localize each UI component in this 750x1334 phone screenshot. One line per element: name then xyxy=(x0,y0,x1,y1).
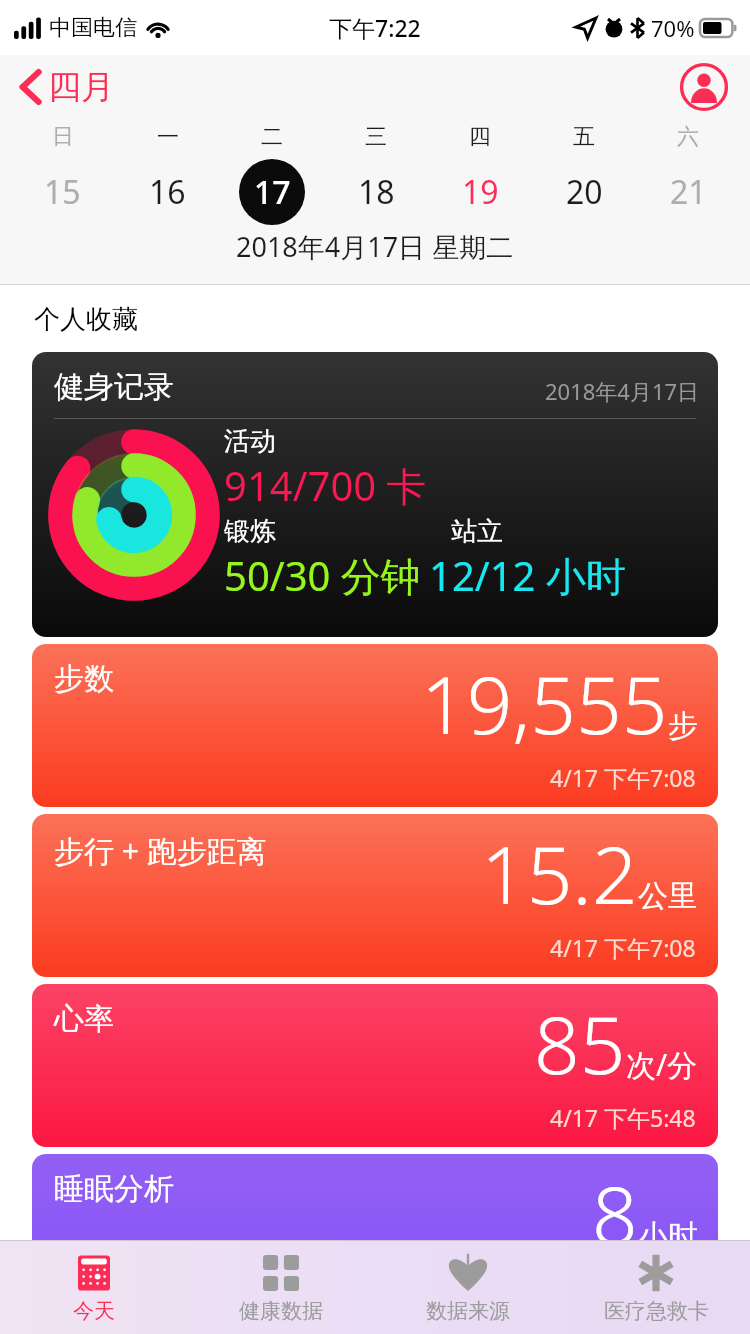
button[interactable]: 心率 xyxy=(32,984,718,1147)
staticText: 20 xyxy=(566,170,603,214)
button[interactable]: 17 xyxy=(220,156,324,228)
staticText: 8 xyxy=(592,1158,638,1267)
staticText: 锻炼 xyxy=(224,515,276,548)
staticText: 步行 + 跑步距离 xyxy=(54,830,267,871)
staticText: 活动 xyxy=(224,425,276,458)
staticText: 步数 xyxy=(54,660,114,698)
staticText: 914/700 卡 xyxy=(224,458,427,513)
button[interactable]: 18 xyxy=(324,156,428,228)
staticText: 公里 xyxy=(638,877,698,915)
staticText: 19,555 xyxy=(421,648,668,757)
staticText: 50/30 分钟 xyxy=(224,548,421,603)
button[interactable]: 19 xyxy=(428,156,532,228)
staticText: 85 xyxy=(534,988,626,1097)
staticText: 2018年4月17日 xyxy=(545,376,700,406)
button[interactable]: 今天 xyxy=(0,1240,187,1334)
button[interactable]: 睡眠分析 xyxy=(32,1154,718,1317)
staticText: 五 xyxy=(573,123,595,151)
button[interactable]: 医疗急救卡 xyxy=(562,1240,750,1334)
button[interactable]: 数据来源 xyxy=(374,1240,562,1334)
staticText: 19 xyxy=(462,170,499,214)
button[interactable]: 个人资料 xyxy=(680,63,728,111)
button[interactable]: 16 xyxy=(115,156,220,228)
staticText: 四月 xyxy=(48,66,114,108)
staticText: 4/17 下午5:48 xyxy=(550,1102,696,1133)
button[interactable]: 健康数据 xyxy=(187,1240,374,1334)
button[interactable]: 步行 + 跑步距离 xyxy=(32,814,718,977)
staticText: 个人收藏 xyxy=(34,303,138,336)
staticText: 4/17 下午7:08 xyxy=(550,932,696,963)
staticText: 中国电信 xyxy=(49,14,137,42)
staticText: 三 xyxy=(365,123,387,151)
staticText: 今天 xyxy=(73,1298,115,1324)
staticText: 12/12 小时 xyxy=(429,548,626,603)
staticText: 健康数据 xyxy=(239,1298,323,1324)
button[interactable]: 15 xyxy=(10,156,115,228)
button[interactable]: 20 xyxy=(532,156,636,228)
staticText: 步 xyxy=(668,707,698,745)
staticText: 4/17 下午7:08 xyxy=(550,762,696,793)
staticText: 医疗急救卡 xyxy=(604,1298,709,1324)
staticText: 16 xyxy=(149,170,186,214)
staticText: 健身记录 xyxy=(54,368,174,406)
staticText: 站立 xyxy=(451,515,503,548)
staticText: 21 xyxy=(670,170,707,214)
staticText: 15 xyxy=(44,170,81,214)
staticText: 次/分 xyxy=(626,1044,698,1085)
staticText: 2018年4月17日 星期二 xyxy=(236,228,514,265)
staticText: 15.2 xyxy=(481,818,638,927)
button[interactable]: 健身记录 xyxy=(32,352,718,637)
staticText: 数据来源 xyxy=(426,1298,510,1324)
staticText: 日 xyxy=(52,123,74,151)
button[interactable]: 21 xyxy=(636,156,740,228)
staticText: 六 xyxy=(677,123,699,151)
staticText: 心率 xyxy=(54,1000,114,1038)
button[interactable]: 步数 xyxy=(32,644,718,807)
staticText: 下午7:22 xyxy=(329,12,421,43)
staticText: 二 xyxy=(261,123,283,151)
staticText: 17 xyxy=(254,170,291,214)
staticText: 18 xyxy=(358,170,395,214)
staticText: 一 xyxy=(157,123,179,151)
staticText: 小时 xyxy=(638,1217,698,1255)
staticText: 70% xyxy=(651,13,695,43)
staticText: 四 xyxy=(469,123,491,151)
staticText: 睡眠分析 xyxy=(54,1170,174,1208)
button[interactable]: 四月 xyxy=(16,62,118,112)
